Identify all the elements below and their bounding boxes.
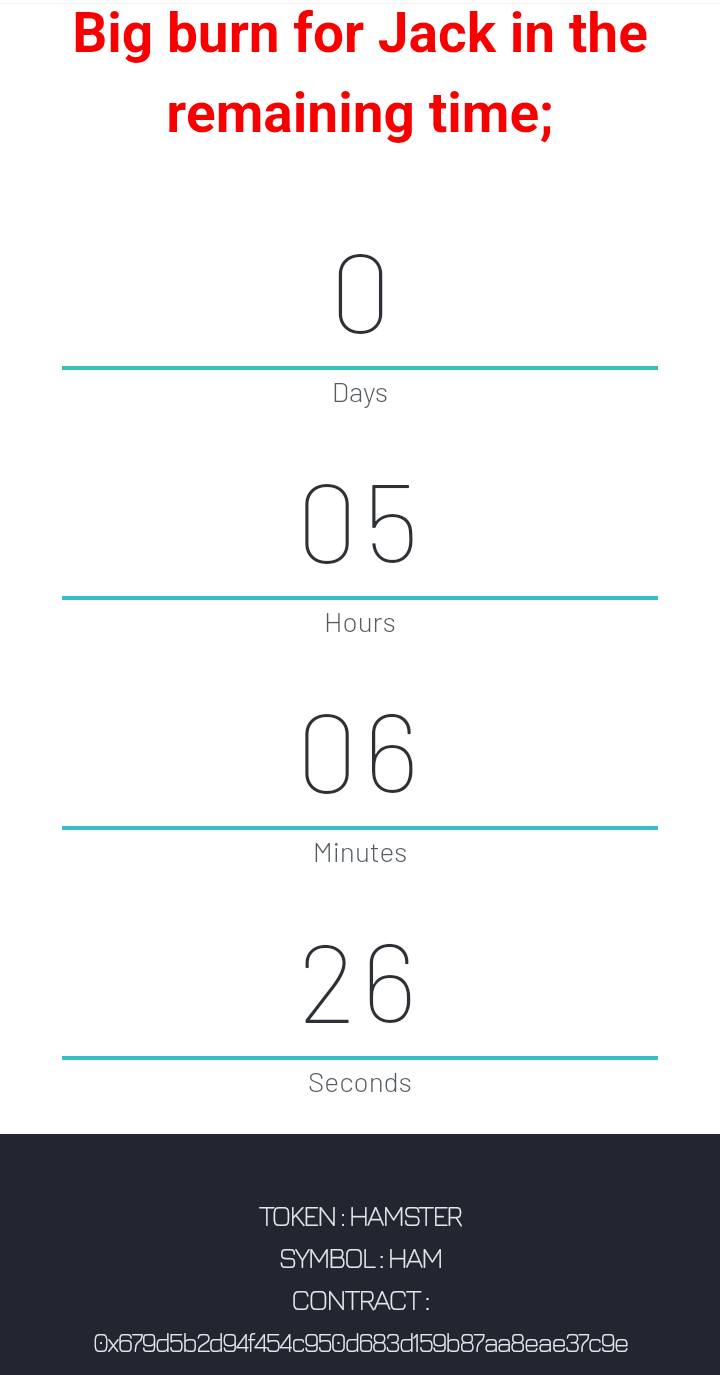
staticText: 05 [0,451,720,585]
staticText: Big burn for Jack in the remaining time; [30,1,690,146]
button[interactable]: Big burn for Jack in the remaining time; [0,0,720,160]
button[interactable]: 26 [0,881,720,1101]
staticText: 06 [0,681,720,815]
staticText: Seconds [0,1064,720,1098]
button[interactable]: 0 [0,191,720,411]
staticText: 0 [3,221,720,355]
staticText: Minutes [0,834,720,868]
button[interactable]: Copy contract address [88,1320,633,1360]
staticText: TOKEN : HAMSTER [0,1198,720,1232]
staticText: Days [0,374,720,408]
staticText: 0x679d5b2d94f454c950d683d159b87aa8eae37c… [88,1326,633,1357]
button[interactable]: 06 [0,651,720,871]
staticText: Hours [0,604,720,638]
staticText: CONTRACT : [0,1282,720,1316]
button[interactable]: 05 [0,421,720,641]
staticText: SYMBOL : HAM [0,1240,720,1274]
staticText: 26 [0,911,720,1045]
